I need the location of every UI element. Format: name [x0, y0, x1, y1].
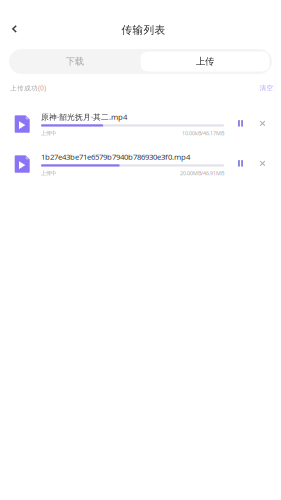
- staticText: 上传成功(0): [10, 84, 46, 92]
- staticText: 传输列表: [121, 23, 165, 37]
- staticText: 原神·韶光抚月·其二.mp4: [41, 112, 127, 122]
- staticText: 上传中: [41, 170, 56, 176]
- button[interactable]: 清空: [259, 84, 273, 92]
- button[interactable]: Cancel: [251, 150, 273, 176]
- button[interactable]: Pause: [229, 150, 251, 176]
- staticText: 10.00kB/46.17MB: [182, 130, 224, 137]
- staticText: 上传中: [41, 130, 56, 136]
- staticText: 1b27e43be71e6579b7940b786930e3f0.mp4: [41, 152, 190, 162]
- button[interactable]: 下载: [9, 49, 140, 74]
- staticText: 20.00MB/46.91MB: [180, 170, 224, 177]
- button[interactable]: Cancel: [251, 110, 273, 136]
- staticText: 下载: [66, 56, 84, 67]
- button[interactable]: Back: [3, 18, 25, 40]
- button[interactable]: Pause: [229, 110, 251, 136]
- staticText: 清空: [259, 84, 273, 92]
- staticText: 上传: [196, 56, 214, 67]
- button[interactable]: 上传: [140, 49, 272, 74]
